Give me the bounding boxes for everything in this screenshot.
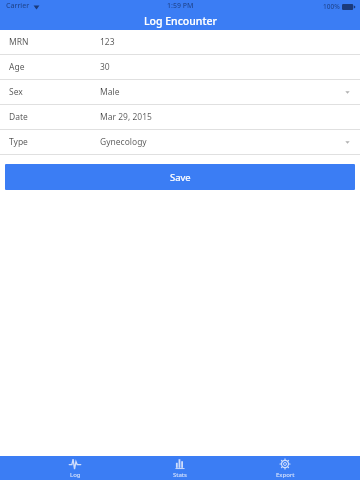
button[interactable]: Export: [255, 456, 315, 480]
staticText: Log Encounter: [144, 14, 217, 28]
staticText: 100%: [323, 2, 340, 11]
button[interactable]: MRN: [0, 30, 360, 54]
button[interactable]: Stats: [150, 456, 210, 480]
staticText: Type: [9, 136, 28, 148]
staticText: 30: [100, 61, 110, 73]
button[interactable]: Age: [0, 55, 360, 79]
staticText: Sex: [9, 86, 23, 98]
staticText: Mar 29, 2015: [100, 111, 152, 123]
staticText: Carrier: [6, 1, 30, 11]
staticText: Male: [100, 86, 120, 98]
staticText: Gynecology: [100, 136, 147, 148]
staticText: 123: [100, 36, 115, 48]
button[interactable]: Type: [0, 130, 360, 154]
staticText: 1:59 PM: [167, 1, 194, 11]
staticText: Age: [9, 61, 25, 73]
button[interactable]: Sex: [0, 80, 360, 104]
staticText: Log: [70, 471, 81, 479]
staticText: Stats: [173, 471, 187, 479]
staticText: MRN: [9, 36, 29, 48]
button[interactable]: Log: [45, 456, 105, 480]
staticText: Export: [276, 471, 295, 479]
staticText: Date: [9, 111, 28, 123]
staticText: Save: [170, 171, 191, 184]
button[interactable]: Save: [5, 164, 355, 190]
button[interactable]: Date: [0, 105, 360, 129]
